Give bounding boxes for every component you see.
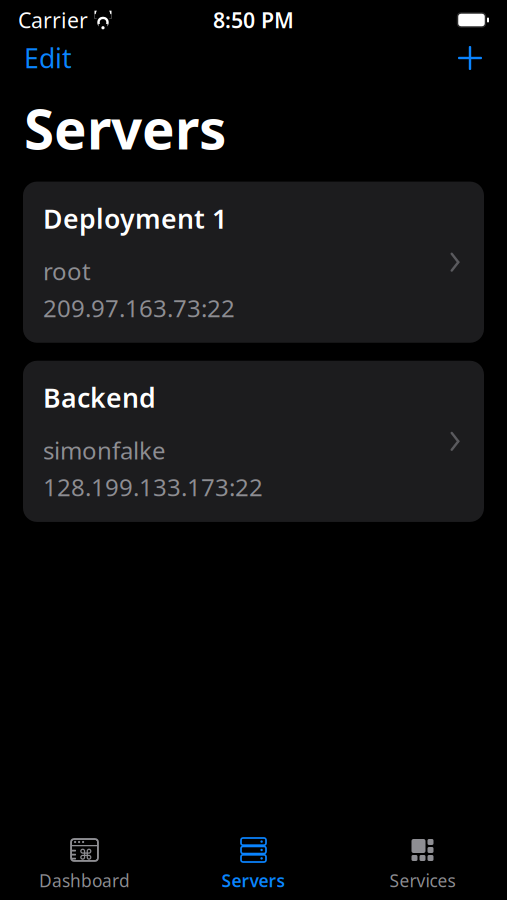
staticText: Backend xyxy=(43,380,156,415)
staticText: ⌘ xyxy=(79,846,93,863)
staticText: Deployment 1 xyxy=(43,201,227,236)
staticText: Servers xyxy=(24,92,226,165)
staticText: Edit xyxy=(24,40,72,76)
button[interactable]: Backend xyxy=(23,361,484,522)
staticText: 209.97.163.73:22 xyxy=(43,292,235,324)
staticText: 8:50 PM xyxy=(213,6,294,34)
staticText: simonfalke xyxy=(43,434,166,466)
staticText: Dashboard xyxy=(39,869,130,892)
button[interactable]: Add Server xyxy=(447,37,493,79)
button[interactable]: Servers xyxy=(169,832,338,896)
staticText: Services xyxy=(389,869,455,892)
staticText: Carrier xyxy=(18,6,88,34)
button[interactable]: ⌘ xyxy=(0,832,169,896)
button[interactable]: Edit xyxy=(14,32,82,84)
button[interactable]: Deployment 1 xyxy=(23,182,484,343)
button[interactable]: Services xyxy=(338,832,507,896)
staticText: root xyxy=(43,255,91,287)
staticText: Servers xyxy=(221,869,285,892)
staticText: 128.199.133.173:22 xyxy=(43,471,263,503)
